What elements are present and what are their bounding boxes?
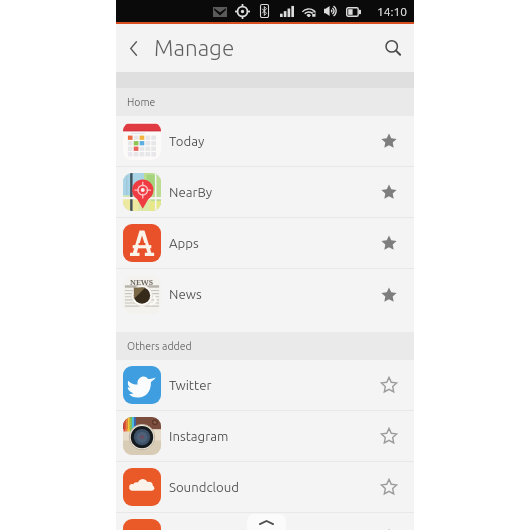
staticText: Soundcloud [169, 480, 239, 495]
staticText: Twitter [169, 378, 212, 393]
button[interactable]: Add Instagram to favourites [373, 420, 405, 452]
staticText: NEWS [130, 277, 154, 287]
staticText: 14:10 [377, 5, 408, 18]
button[interactable]: Remove Apps from favourites [373, 227, 405, 259]
button[interactable]: Back [120, 35, 146, 61]
button[interactable]: Add Twitter to favourites [373, 369, 405, 401]
staticText: News [169, 287, 202, 302]
button[interactable]: Add Soundcloud to favourites [373, 471, 405, 503]
button[interactable]: Remove Today from favourites [373, 125, 405, 157]
staticText: Today [169, 134, 205, 149]
button[interactable]: Remove NearBy from favourites [373, 176, 405, 208]
staticText: Apps [169, 236, 199, 251]
button[interactable]: Today [116, 116, 414, 167]
button[interactable]: NearBy [116, 167, 414, 218]
button[interactable]: NEWS [116, 269, 414, 320]
button[interactable]: Twitter [116, 360, 414, 411]
staticText: Instagram [169, 429, 229, 444]
staticText: Home [127, 96, 156, 108]
button[interactable]: Remove News from favourites [373, 279, 405, 311]
button[interactable]: Soundcloud [116, 513, 414, 530]
button[interactable]: Open bottom edge [247, 514, 286, 530]
staticText: NearBy [169, 185, 213, 200]
button[interactable]: Search [379, 34, 407, 62]
button[interactable]: Instagram [116, 411, 414, 462]
button[interactable]: Apps [116, 218, 414, 269]
staticText: Others added [127, 340, 192, 352]
button[interactable]: Soundcloud [116, 462, 414, 513]
staticText: Manage [154, 35, 235, 60]
